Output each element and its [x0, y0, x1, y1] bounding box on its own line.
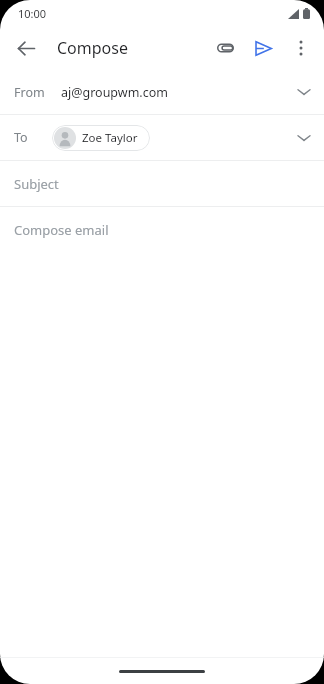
- staticText: Compose email: [14, 221, 109, 239]
- button[interactable]: From: [0, 70, 324, 114]
- button[interactable]: To: [0, 115, 324, 160]
- button[interactable]: More options: [282, 29, 320, 67]
- button[interactable]: Send: [244, 29, 282, 67]
- staticText: 10:00: [18, 6, 47, 21]
- staticText: From: [14, 84, 45, 101]
- staticText: Zoe Taylor: [82, 130, 138, 146]
- staticText: aj@groupwm.com: [61, 84, 168, 101]
- staticText: To: [14, 129, 28, 146]
- staticText: Compose: [57, 37, 128, 59]
- button[interactable]: Attach file: [206, 29, 244, 67]
- button[interactable]: Zoe Taylor: [52, 125, 150, 151]
- button[interactable]: Back: [6, 28, 46, 68]
- staticText: Subject: [14, 175, 59, 193]
- button[interactable]: Subject: [0, 161, 324, 206]
- button[interactable]: Compose email: [0, 207, 324, 252]
